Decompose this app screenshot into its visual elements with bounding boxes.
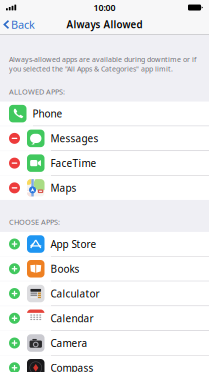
button[interactable]: Add [9,238,20,249]
staticText: Calendar [50,311,93,325]
button[interactable]: Add [9,337,20,348]
staticText: Calculator [50,287,99,300]
staticText: Messages [50,132,98,145]
button[interactable]: Compass [0,356,209,372]
staticText: ALLOWED APPS: [9,87,65,97]
staticText: 10:00 [93,1,115,13]
button[interactable]: Calendar [0,306,209,330]
button[interactable]: Maps [0,176,209,200]
staticText: Back [11,17,35,32]
staticText: App Store [50,237,96,251]
button[interactable]: App Store [0,232,209,256]
button[interactable]: Add [9,288,20,299]
staticText: Compass [50,361,93,372]
button[interactable]: Calculator [0,281,209,305]
button[interactable]: Messages [0,126,209,150]
staticText: Books [50,262,79,276]
staticText: Always Allowed [66,18,142,31]
button[interactable]: Remove [9,158,20,169]
staticText: FaceTime [50,156,96,170]
staticText: Always-allowed apps are available during… [9,54,196,74]
button[interactable]: Add [9,263,20,274]
button[interactable]: Remove [9,182,20,193]
button[interactable]: Books [0,257,209,281]
button[interactable]: Camera [0,331,209,355]
staticText: Maps [50,181,76,195]
button[interactable]: Add [9,313,20,324]
button[interactable]: Add [9,362,20,372]
staticText: Camera [50,336,87,350]
staticText: CHOOSE APPS: [9,217,60,227]
button[interactable]: Back [0,15,40,34]
button[interactable]: FaceTime [0,151,209,175]
staticText: Phone [32,107,62,120]
button[interactable]: Phone [0,102,209,126]
button[interactable]: Remove [9,133,20,144]
